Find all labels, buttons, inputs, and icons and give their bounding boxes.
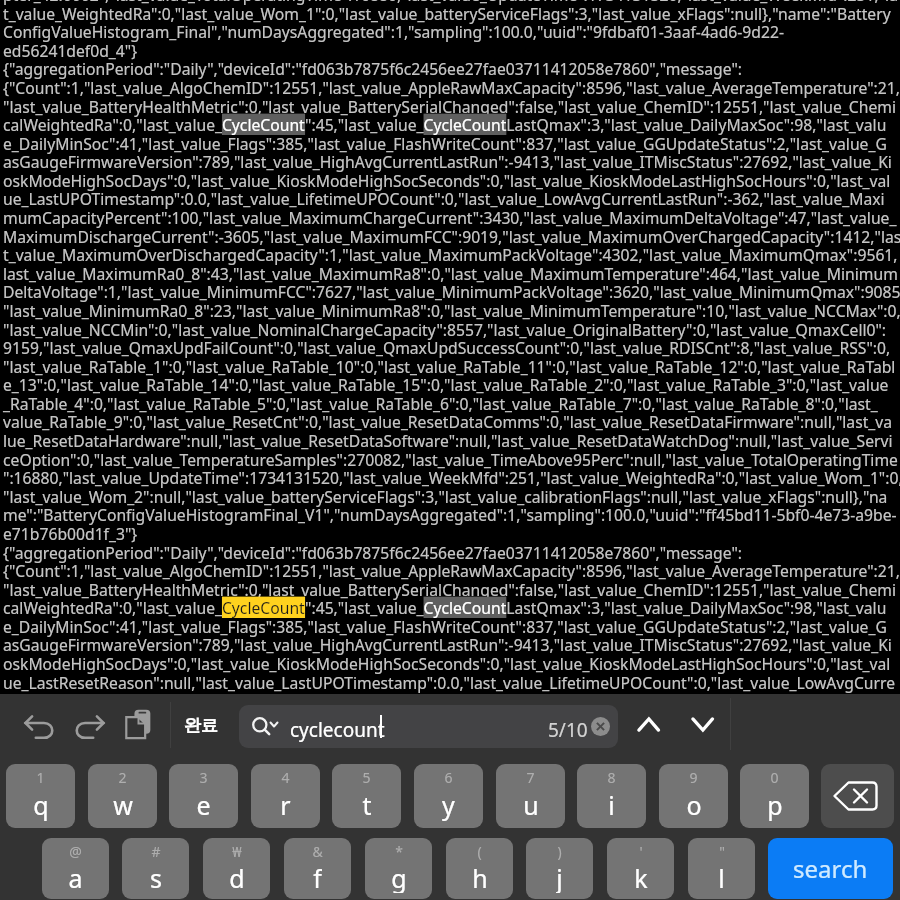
staticText: ue_LastUPOTimestamp":0.0,"last_value_Lif… bbox=[3, 188, 885, 209]
staticText: "last_value_BatteryHealthMetric":0,"last… bbox=[3, 579, 896, 600]
staticText: "last_value_RaTable_1":0,"last_value_RaT… bbox=[3, 356, 896, 377]
button[interactable]: Backspace bbox=[821, 764, 894, 828]
staticText: o bbox=[686, 788, 702, 821]
staticText: k bbox=[634, 861, 648, 893]
button[interactable]: Undo bbox=[21, 706, 58, 743]
button[interactable]: * bbox=[365, 838, 432, 899]
staticText: {"aggregationPeriod":"Daily","deviceId":… bbox=[3, 542, 743, 563]
staticText: t_value_WeightedRa":0,"last_value_Wom_1"… bbox=[3, 3, 891, 24]
staticText: s bbox=[150, 861, 162, 893]
staticText: _RaTable_4":0,"last_value_RaTable_5":0,"… bbox=[3, 393, 878, 414]
staticText: cyclecount bbox=[290, 717, 385, 743]
staticText: q bbox=[33, 788, 49, 821]
button[interactable]: ) bbox=[526, 838, 593, 899]
staticText: value_RaTable_9":0,"last_value_ResetCnt"… bbox=[3, 411, 893, 432]
staticText: oskModeHighSocDays":0,"last_value_KioskM… bbox=[3, 653, 891, 674]
staticText: 4 bbox=[281, 768, 290, 787]
staticText: 9 bbox=[689, 768, 698, 787]
staticText: 8 bbox=[607, 768, 616, 787]
staticText: ₩ bbox=[232, 842, 242, 861]
staticText: "last_value_BatteryHealthMetric":0,"last… bbox=[3, 96, 896, 117]
staticText: ( bbox=[477, 842, 482, 861]
staticText: 9159,"last_value_QmaxUpdFailCount":0,"la… bbox=[3, 337, 891, 358]
staticText: last_value_MaximumRa0_8":43,"last_value_… bbox=[3, 263, 898, 284]
staticText: "last_value_Wom_2":null,"last_value_batt… bbox=[3, 486, 888, 507]
staticText: calWeightedRa":0,"last_value_CycleCount"… bbox=[3, 597, 887, 618]
staticText: MaximumDischargeCurrent":-3605,"last_val… bbox=[3, 226, 900, 247]
button[interactable]: Next match bbox=[684, 706, 721, 743]
staticText: p bbox=[767, 788, 783, 821]
staticText: g bbox=[391, 861, 407, 893]
staticText: oskModeHighSocDays":0,"last_value_KioskM… bbox=[3, 170, 891, 191]
button[interactable]: 완료 bbox=[178, 704, 224, 746]
button[interactable]: 4 bbox=[251, 764, 320, 828]
staticText: t_value_MaximumOverDischargedCapacity":1… bbox=[3, 244, 898, 265]
staticText: f bbox=[313, 861, 322, 893]
staticText: d bbox=[229, 861, 245, 893]
staticText: u bbox=[523, 788, 539, 821]
staticText: 0 bbox=[770, 768, 779, 787]
staticText: & bbox=[312, 842, 323, 861]
staticText: asGaugeFirmwareVersion":789,"last_value_… bbox=[3, 634, 892, 655]
staticText: i bbox=[608, 788, 615, 821]
staticText: pter_42.0002","last_value_TotalOperating… bbox=[3, 0, 900, 5]
button[interactable]: Clipboard bbox=[120, 706, 157, 743]
button[interactable]: # bbox=[122, 838, 189, 899]
staticText: a bbox=[68, 861, 83, 893]
staticText: 2 bbox=[118, 768, 127, 787]
staticText: ed56241def0d_4"} bbox=[3, 40, 138, 61]
staticText: {"aggregationPeriod":"Daily","deviceId":… bbox=[3, 58, 743, 79]
button[interactable]: search bbox=[768, 838, 893, 899]
staticText: {"Count":1,"last_value_AlgoChemID":12551… bbox=[3, 77, 900, 98]
staticText: e_DailyMinSoc":41,"last_value_Flags":385… bbox=[3, 133, 887, 154]
button[interactable]: 6 bbox=[414, 764, 483, 828]
button[interactable]: & bbox=[284, 838, 351, 899]
staticText: @ bbox=[69, 842, 82, 861]
staticText: 완료 bbox=[184, 715, 218, 736]
staticText: "last_value_MinimumRa0_8":23,"last_value… bbox=[3, 300, 900, 321]
button[interactable]: 0 bbox=[740, 764, 809, 828]
button[interactable]: Clear search bbox=[591, 717, 610, 736]
staticText: {"Count":1,"last_value_AlgoChemID":12551… bbox=[3, 560, 900, 581]
button[interactable]: Redo bbox=[71, 706, 108, 743]
staticText: ) bbox=[557, 842, 562, 861]
staticText: ":16880,"last_value_UpdateTime":17341315… bbox=[3, 467, 900, 488]
staticText: r bbox=[280, 788, 291, 821]
button[interactable]: @ bbox=[42, 838, 109, 899]
button[interactable]: cyclecount bbox=[239, 705, 618, 748]
staticText: ue_LastResetReason":null,"last_value_Las… bbox=[3, 672, 896, 693]
button[interactable]: ( bbox=[446, 838, 513, 899]
button[interactable]: ₩ bbox=[203, 838, 270, 899]
staticText: " bbox=[719, 842, 725, 861]
staticText: mumCapacityPercent":100,"last_value_Maxi… bbox=[3, 207, 897, 228]
button[interactable]: 5 bbox=[332, 764, 401, 828]
button[interactable]: 7 bbox=[496, 764, 565, 828]
staticText: # bbox=[151, 842, 161, 861]
button[interactable]: " bbox=[688, 838, 755, 899]
staticText: lue_ResetDataHardware":null,"last_value_… bbox=[3, 430, 893, 451]
button[interactable]: ' bbox=[607, 838, 674, 899]
staticText: "last_value_NCCMin":0,"last_value_Nomina… bbox=[3, 319, 887, 340]
staticText: 5 bbox=[362, 768, 371, 787]
staticText: ceOption":0,"last_value_TemperatureSampl… bbox=[3, 449, 898, 470]
button[interactable]: 1 bbox=[6, 764, 75, 828]
staticText: DeltaVoltage":1,"last_value_MinimumFCC":… bbox=[3, 281, 900, 302]
staticText: 3 bbox=[199, 768, 208, 787]
staticText: e_13":0,"last_value_RaTable_14":0,"last_… bbox=[3, 374, 889, 395]
staticText: search bbox=[793, 852, 868, 885]
staticText: ' bbox=[639, 842, 643, 861]
button[interactable]: 2 bbox=[88, 764, 157, 828]
staticText: e bbox=[196, 788, 211, 821]
staticText: l bbox=[718, 861, 725, 893]
staticText: asGaugeFirmwareVersion":789,"last_value_… bbox=[3, 151, 892, 172]
staticText: 1 bbox=[36, 768, 45, 787]
staticText: me":"BatteryConfigValueHistogramFinal_V1… bbox=[3, 504, 897, 525]
staticText: h bbox=[472, 861, 488, 893]
button[interactable]: Previous match bbox=[630, 706, 667, 743]
button[interactable]: 8 bbox=[577, 764, 646, 828]
button[interactable]: 9 bbox=[659, 764, 728, 828]
staticText: 7 bbox=[526, 768, 535, 787]
staticText: e_DailyMinSoc":41,"last_value_Flags":385… bbox=[3, 616, 887, 637]
button[interactable]: 3 bbox=[169, 764, 238, 828]
staticText: e71b76b00d1f_3"} bbox=[3, 523, 138, 544]
